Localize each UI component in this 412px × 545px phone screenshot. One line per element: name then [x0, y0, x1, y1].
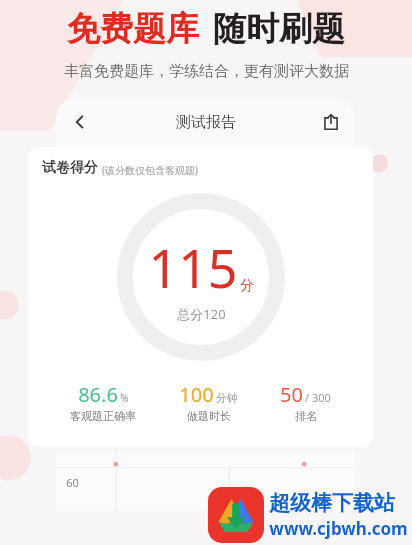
staticText: 试卷得分	[42, 159, 98, 177]
staticText: 超级棒下载站	[269, 490, 395, 516]
staticText: 随时刷题	[213, 8, 345, 50]
staticText: 50	[280, 381, 303, 408]
staticText: (该分数仅包含客观题)	[102, 163, 198, 177]
staticText: 排名	[295, 409, 317, 423]
staticText: 分钟	[216, 391, 238, 405]
staticText: 做题时长	[187, 409, 231, 423]
staticText: 丰富免费题库，学练结合，更有测评大数据	[64, 62, 349, 81]
staticText: 客观题正确率	[70, 409, 136, 423]
staticText: 100	[179, 381, 214, 408]
staticText: / 300	[305, 390, 331, 405]
staticText: 115	[148, 232, 238, 303]
staticText: %	[120, 391, 129, 405]
staticText: 免费题库	[67, 8, 199, 50]
button[interactable]: 返回	[66, 108, 94, 136]
button[interactable]: 试卷得分	[28, 147, 373, 447]
staticText: 测试报告	[176, 113, 236, 132]
button[interactable]: 分享	[317, 108, 345, 136]
staticText: 60	[66, 475, 79, 490]
staticText: www.cjbwh.com	[269, 517, 408, 540]
staticText: 分	[240, 277, 254, 295]
staticText: 86.6	[78, 381, 118, 408]
staticText: 总分120	[177, 305, 226, 323]
